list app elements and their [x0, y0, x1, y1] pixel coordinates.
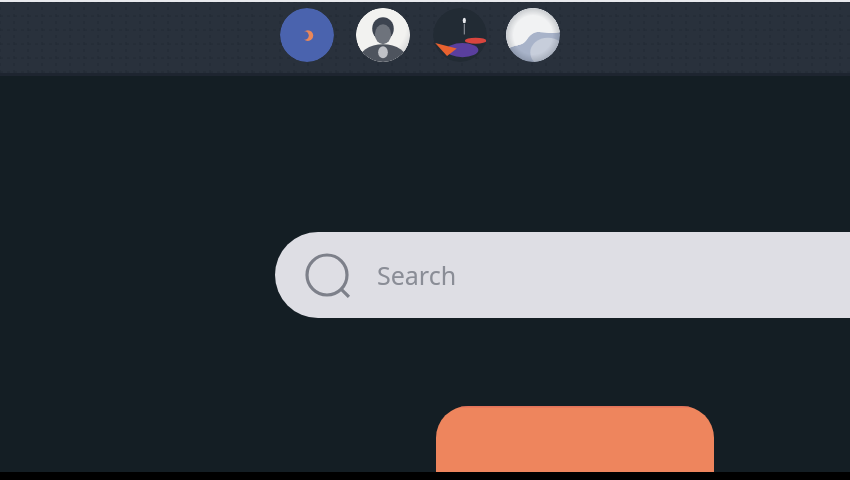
button[interactable]: Search — [275, 232, 850, 318]
button[interactable]: Story, concert — [433, 8, 487, 62]
button[interactable] — [436, 406, 714, 480]
button[interactable]: Story, night — [280, 8, 334, 62]
button[interactable]: Story, moon — [506, 8, 560, 62]
button[interactable]: Story, portrait — [356, 8, 410, 62]
staticText: Search — [377, 258, 457, 292]
